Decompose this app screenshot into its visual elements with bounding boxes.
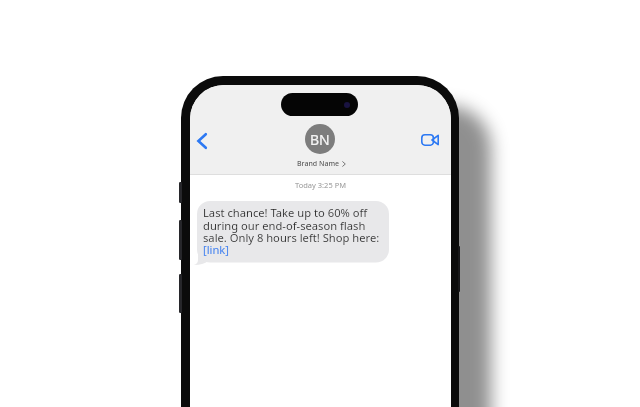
button[interactable]: Brand Name <box>265 158 375 170</box>
staticText: Brand Name <box>297 159 340 169</box>
staticText: Today 3:25 PM <box>295 180 346 190</box>
button[interactable]: Back <box>190 129 214 153</box>
staticText: Last chance! Take up to 60% off during o… <box>203 205 380 257</box>
button[interactable]: Video call <box>416 126 444 154</box>
staticText: BN <box>310 130 330 149</box>
button[interactable]: BN <box>305 124 335 154</box>
